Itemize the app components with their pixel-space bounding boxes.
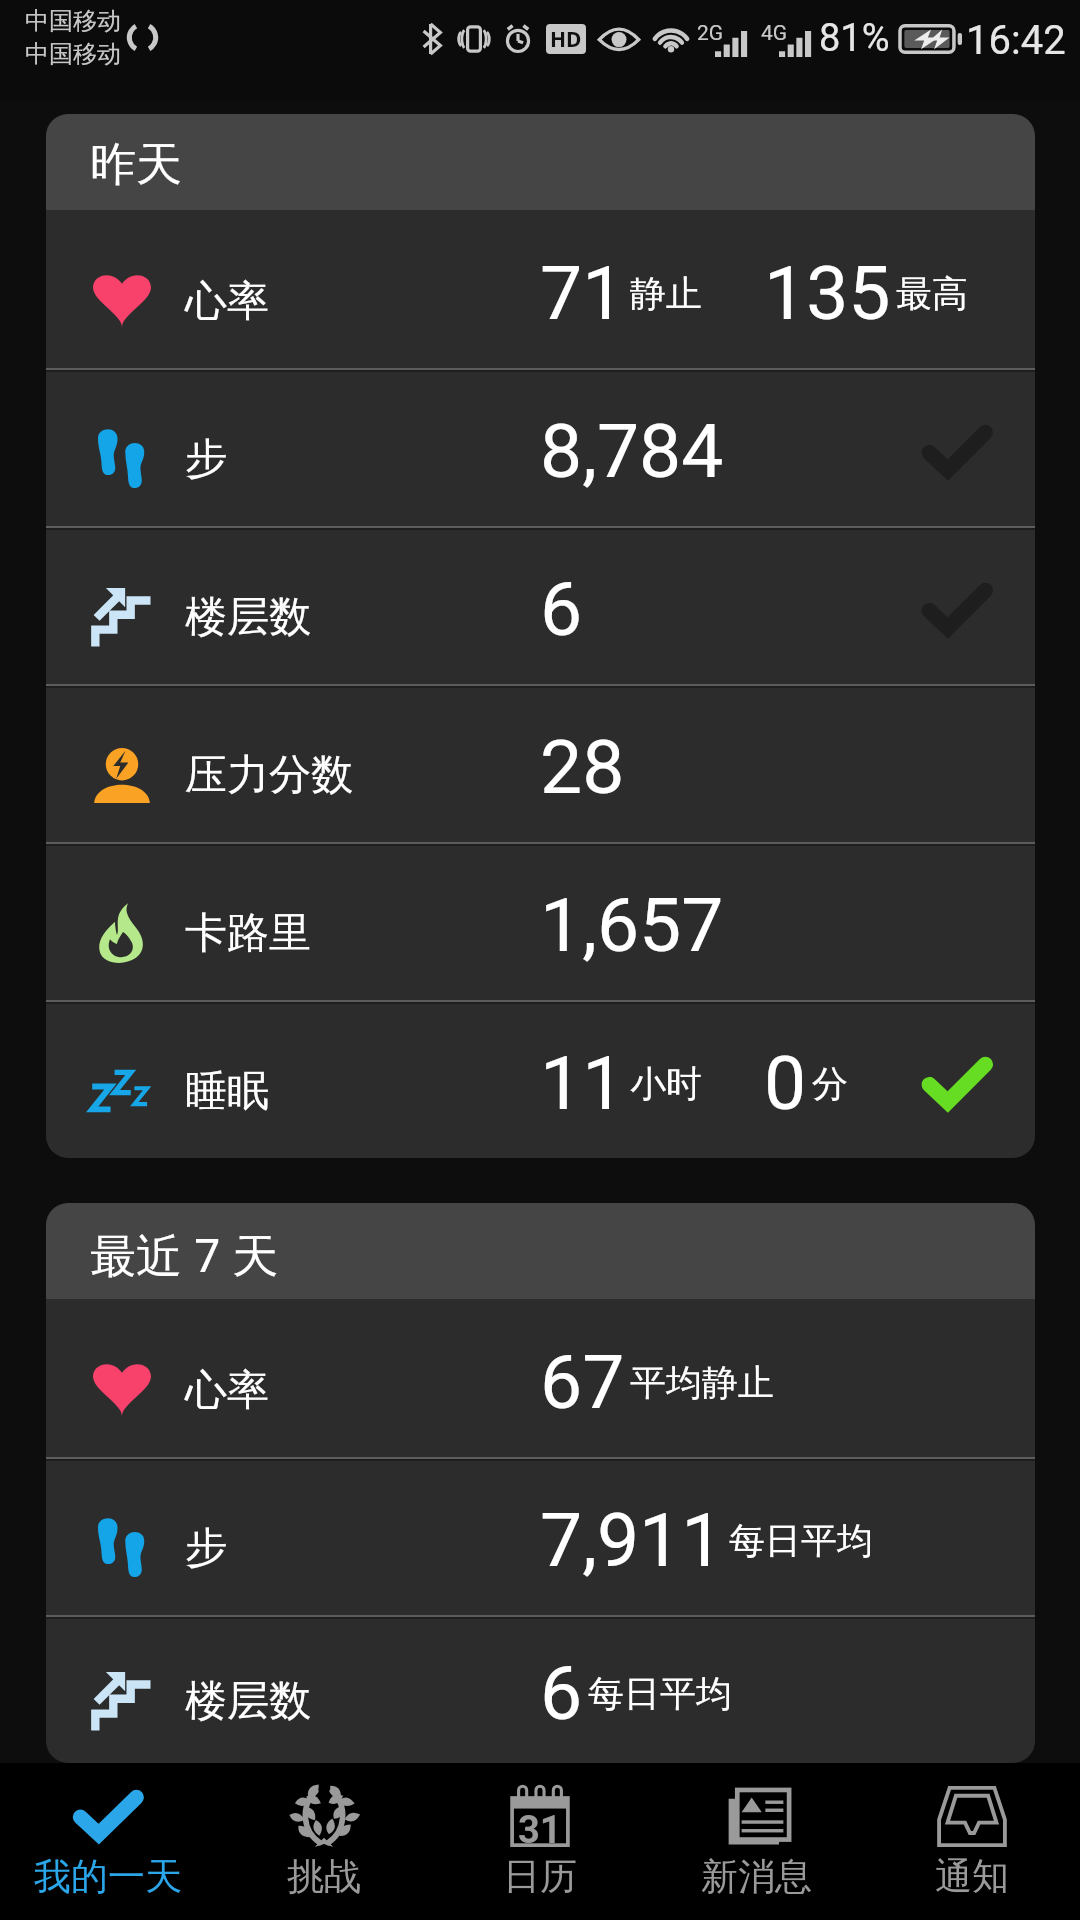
staticText: 28 <box>540 723 625 811</box>
staticText: 卡路里 <box>185 907 311 960</box>
staticText: 11 <box>540 1039 625 1127</box>
button[interactable]: 挑战 <box>216 1763 432 1920</box>
staticText: 31 <box>518 1808 562 1853</box>
staticText: 81% <box>819 16 890 61</box>
staticText: 睡眠 <box>185 1065 269 1118</box>
staticText: 6 <box>540 1649 583 1737</box>
staticText: 1,657 <box>540 881 724 969</box>
staticText: 静止 <box>630 271 702 316</box>
staticText: 67 <box>540 1338 625 1426</box>
staticText: 6 <box>540 565 583 653</box>
staticText: 最高 <box>896 271 968 316</box>
staticText: 2G <box>697 21 724 46</box>
staticText: 8,784 <box>540 407 724 495</box>
button[interactable]: 压力分数 <box>46 684 1035 842</box>
button[interactable]: 心率 <box>46 210 1035 368</box>
staticText: 新消息 <box>701 1853 812 1900</box>
staticText: 中国移动 <box>25 6 121 36</box>
button[interactable]: 步 <box>46 368 1035 526</box>
staticText: 我的一天 <box>34 1853 182 1900</box>
staticText: 楼层数 <box>185 591 311 644</box>
staticText: 心率 <box>185 1364 269 1417</box>
staticText: 最近 7 天 <box>90 1223 279 1286</box>
button[interactable]: 通知 <box>864 1763 1080 1920</box>
staticText: 平均静止 <box>630 1360 774 1405</box>
staticText: 0 <box>764 1039 807 1127</box>
staticText: 通知 <box>935 1853 1009 1900</box>
staticText: 16:42 <box>966 17 1066 64</box>
staticText: 小时 <box>630 1061 702 1106</box>
staticText: 挑战 <box>287 1853 361 1900</box>
button[interactable]: 卡路里 <box>46 842 1035 1000</box>
button[interactable]: 睡眠 <box>46 1000 1035 1158</box>
staticText: 压力分数 <box>185 749 353 802</box>
button[interactable]: 最近 7 天 <box>46 1203 1035 1299</box>
staticText: 4G <box>761 21 788 46</box>
staticText: 楼层数 <box>185 1675 311 1728</box>
button[interactable]: 楼层数 <box>46 1615 1035 1763</box>
staticText: 步 <box>185 433 227 486</box>
button[interactable]: 心率 <box>46 1299 1035 1457</box>
staticText: 71 <box>540 249 625 337</box>
staticText: 步 <box>185 1522 227 1575</box>
staticText: 心率 <box>185 275 269 328</box>
staticText: 日历 <box>503 1853 577 1900</box>
staticText: 每日平均 <box>729 1518 873 1563</box>
staticText: 中国移动 <box>25 39 121 69</box>
button[interactable]: 楼层数 <box>46 526 1035 684</box>
staticText: 135 <box>764 249 891 337</box>
staticText: 7,911 <box>540 1496 724 1584</box>
button[interactable]: 我的一天 <box>0 1763 216 1920</box>
staticText: 分 <box>812 1061 848 1106</box>
staticText: 每日平均 <box>588 1671 732 1716</box>
button[interactable]: 日历 <box>432 1763 648 1920</box>
staticText: HD <box>550 25 582 54</box>
button[interactable]: 步 <box>46 1457 1035 1615</box>
staticText: 昨天 <box>90 136 182 194</box>
button[interactable]: 新消息 <box>648 1763 864 1920</box>
button[interactable]: 昨天 <box>46 114 1035 210</box>
